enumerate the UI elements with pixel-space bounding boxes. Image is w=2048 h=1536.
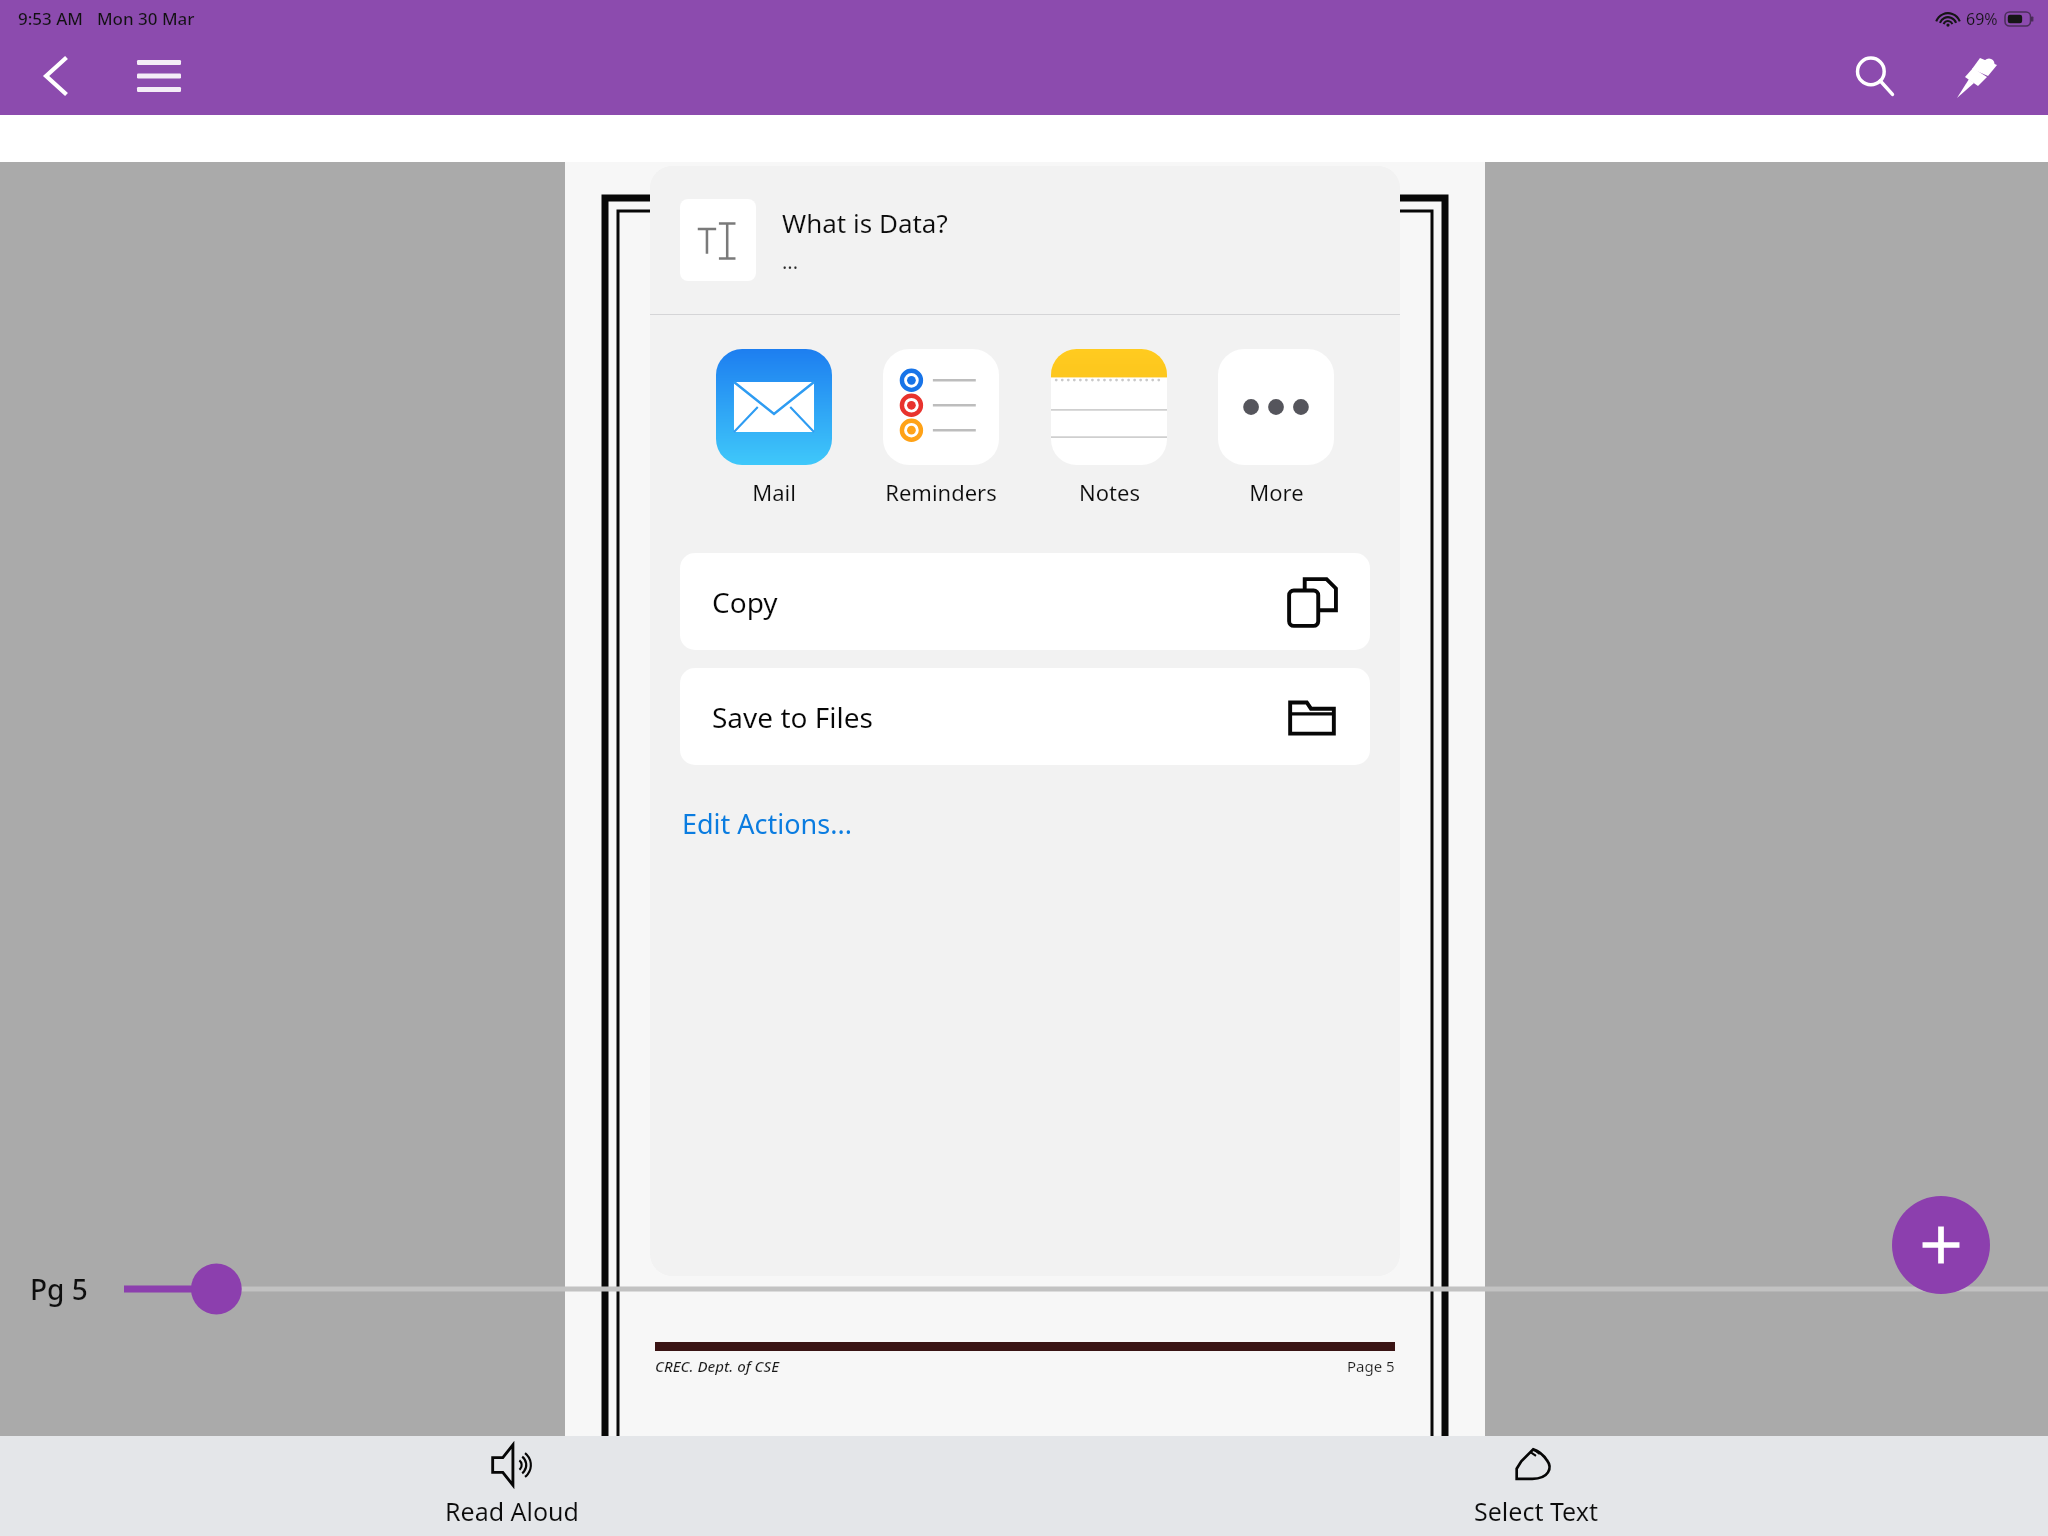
staticText: Copy xyxy=(712,583,778,621)
button[interactable]: Edit Actions... xyxy=(650,793,1400,854)
staticText: 69% xyxy=(1966,8,1998,30)
staticText: 9:53 AM xyxy=(18,7,83,30)
staticText: More xyxy=(1249,477,1304,507)
staticText: Page 5 xyxy=(1347,1356,1395,1376)
button[interactable]: Mail xyxy=(710,349,838,507)
staticText: Save to Files xyxy=(712,698,873,736)
staticText: Notes xyxy=(1079,477,1140,507)
button[interactable]: What is Data? xyxy=(650,166,1400,314)
button[interactable]: Reminders xyxy=(877,349,1005,507)
button[interactable]: Notes xyxy=(1045,349,1173,507)
button[interactable]: Pin xyxy=(1942,41,2012,111)
button[interactable]: Save to Files xyxy=(680,668,1370,765)
staticText: Select Text xyxy=(1474,1494,1598,1528)
staticText: Mail xyxy=(752,477,796,507)
staticText: CREC. Dept. of CSE xyxy=(655,1356,780,1376)
button[interactable]: Copy xyxy=(680,553,1370,650)
button[interactable]: More xyxy=(1212,349,1340,507)
button[interactable]: Search xyxy=(1842,43,1908,109)
button[interactable]: Add xyxy=(1892,1196,1990,1294)
staticText: Pg 5 xyxy=(30,1270,88,1308)
staticText: Reminders xyxy=(885,477,997,507)
button[interactable]: Read Aloud xyxy=(421,1436,603,1534)
staticText: Read Aloud xyxy=(445,1494,579,1528)
staticText: What is Data? xyxy=(782,205,948,240)
staticText: Edit Actions... xyxy=(682,805,852,842)
button[interactable]: Select Text xyxy=(1450,1436,1622,1534)
staticText: ... xyxy=(782,248,799,275)
button[interactable]: Back xyxy=(30,49,84,103)
staticText: Mon 30 Mar xyxy=(97,7,195,30)
button[interactable]: Menu xyxy=(128,45,190,107)
button[interactable]: Page slider xyxy=(124,1262,2048,1316)
